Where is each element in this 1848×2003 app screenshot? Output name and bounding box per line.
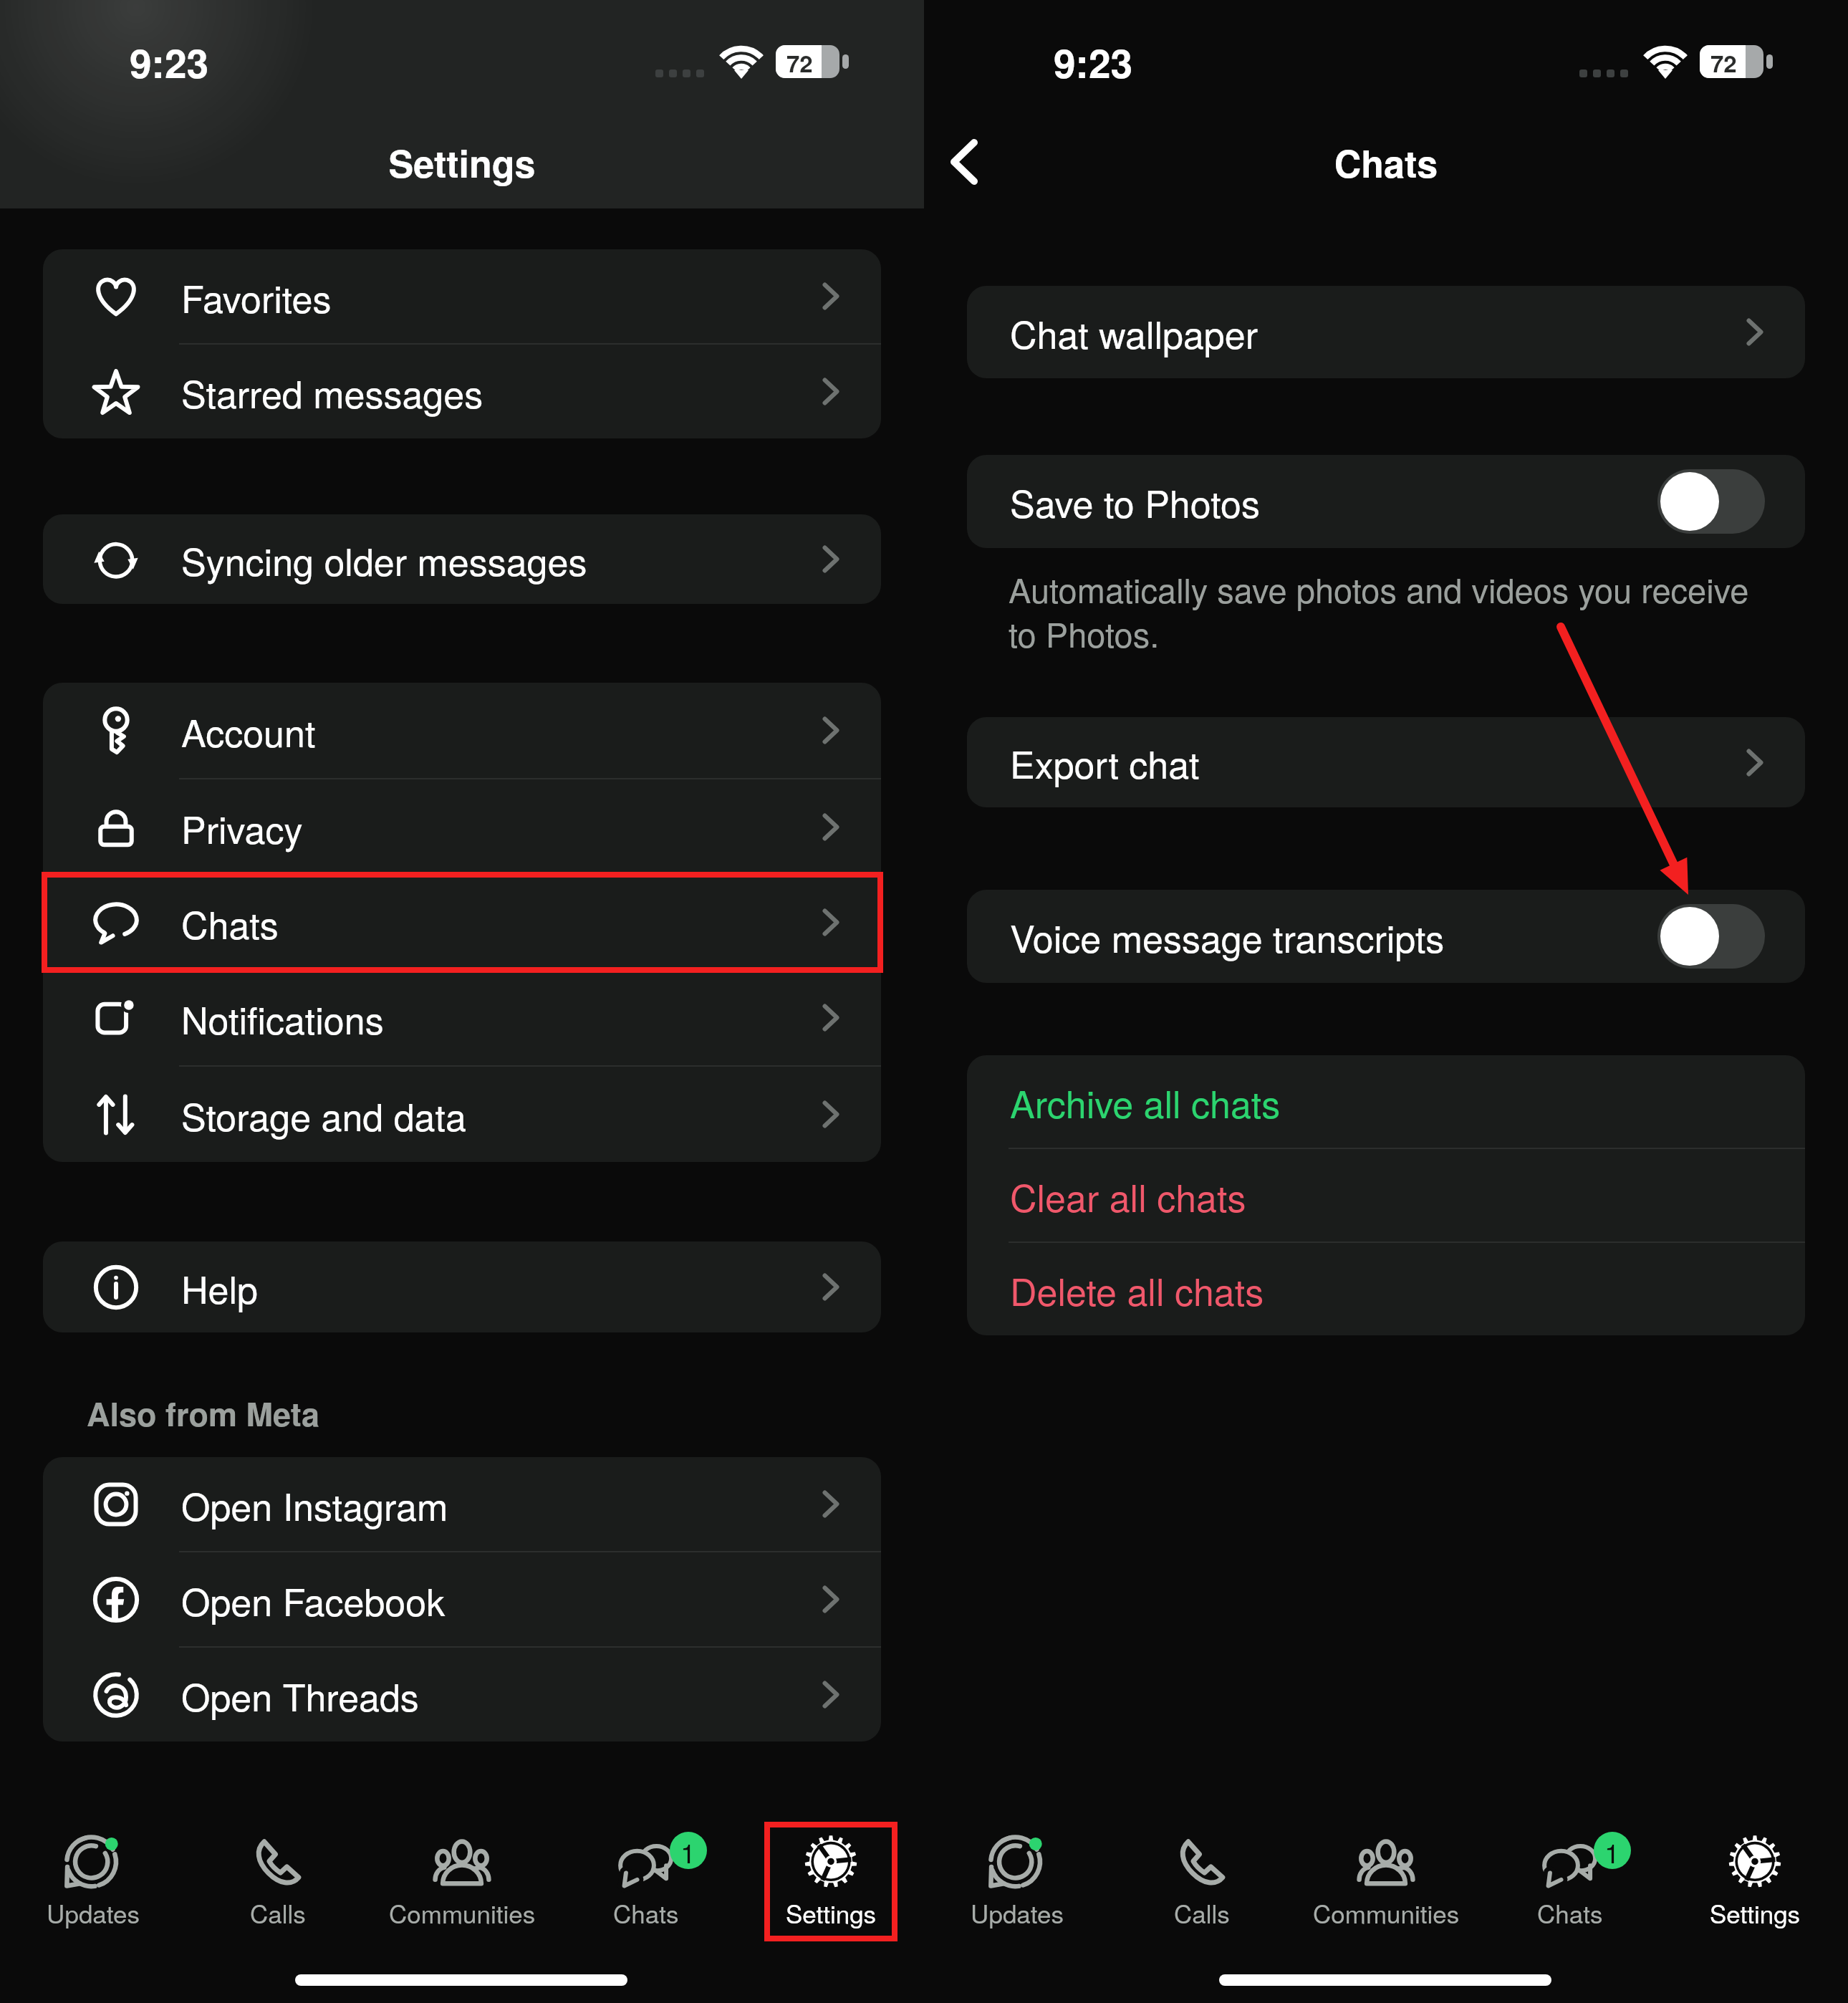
staticText: Clear all chats — [1010, 1169, 1246, 1222]
staticText: Automatically save photos and videos you… — [1009, 565, 1749, 657]
button[interactable]: Clear all chats — [967, 1149, 1805, 1241]
button[interactable]: Syncing older messages — [43, 514, 881, 604]
staticText: Settings — [0, 135, 924, 188]
staticText: Updates — [971, 1895, 1064, 1931]
staticText: Voice message transcripts — [1010, 910, 1445, 963]
staticText: Privacy — [181, 801, 303, 854]
button[interactable]: Voice message transcripts — [967, 890, 1805, 983]
button[interactable]: Settings — [740, 1805, 922, 1931]
button[interactable]: Starred messages — [43, 345, 881, 438]
staticText: Starred messages — [181, 365, 483, 418]
button[interactable]: Chat wallpaper — [967, 286, 1805, 378]
staticText: Help — [181, 1261, 258, 1314]
staticText: Account — [181, 704, 316, 757]
staticText: Chat wallpaper — [1010, 306, 1259, 359]
button[interactable]: Open Threads — [43, 1648, 881, 1742]
button[interactable]: Communities — [1295, 1805, 1477, 1931]
staticText: Export chat — [1010, 736, 1200, 789]
staticText: Open Facebook — [181, 1573, 446, 1626]
button[interactable]: 1 — [555, 1805, 737, 1931]
staticText: Communities — [1313, 1895, 1460, 1931]
button[interactable]: Notifications — [43, 970, 881, 1065]
staticText: 9:23 — [130, 34, 209, 90]
button[interactable]: Communities — [371, 1805, 553, 1931]
staticText: Open Threads — [181, 1668, 419, 1721]
button[interactable]: Settings — [1664, 1805, 1846, 1931]
staticText: 72 — [1710, 46, 1737, 80]
button[interactable]: Calls — [1111, 1805, 1293, 1931]
button[interactable]: Open Instagram — [43, 1457, 881, 1551]
button[interactable]: Favorites — [43, 249, 881, 343]
staticText: Syncing older messages — [181, 533, 587, 586]
staticText: Chats — [613, 1895, 679, 1931]
button[interactable]: Delete all chats — [967, 1243, 1805, 1335]
button[interactable]: Save to Photos — [967, 455, 1805, 548]
button[interactable]: Export chat — [967, 717, 1805, 807]
staticText: Save to Photos — [1010, 475, 1261, 528]
staticText: Archive all chats — [1010, 1075, 1281, 1128]
staticText: 1 — [680, 1832, 696, 1869]
button[interactable]: 1 — [1479, 1805, 1661, 1931]
staticText: Settings — [1710, 1895, 1801, 1931]
button[interactable]: Updates — [2, 1805, 184, 1931]
button[interactable]: Help — [43, 1241, 881, 1332]
staticText: Favorites — [181, 270, 332, 323]
staticText: Open Instagram — [181, 1478, 448, 1531]
staticText: Settings — [786, 1895, 877, 1931]
staticText: 72 — [786, 46, 813, 80]
staticText: Calls — [250, 1895, 306, 1931]
button[interactable]: Storage and data — [43, 1067, 881, 1162]
staticText: Storage and data — [181, 1088, 466, 1141]
button[interactable]: Updates — [926, 1805, 1108, 1931]
button[interactable]: Account — [43, 683, 881, 778]
staticText: 9:23 — [1054, 34, 1133, 90]
button[interactable]: Chats — [43, 875, 881, 970]
button[interactable]: Calls — [187, 1805, 369, 1931]
staticText: Delete all chats — [1010, 1263, 1264, 1316]
button[interactable]: Privacy — [43, 779, 881, 875]
staticText: Also from Meta — [87, 1390, 320, 1436]
staticText: 1 — [1604, 1832, 1620, 1869]
button[interactable]: Open Facebook — [43, 1552, 881, 1646]
staticText: Notifications — [181, 991, 384, 1044]
button[interactable]: Archive all chats — [967, 1055, 1805, 1148]
staticText: Communities — [389, 1895, 536, 1931]
staticText: Chats — [1537, 1895, 1603, 1931]
staticText: Calls — [1174, 1895, 1230, 1931]
staticText: Updates — [47, 1895, 140, 1931]
staticText: Chats — [181, 896, 279, 949]
staticText: Chats — [924, 135, 1848, 188]
button[interactable]: Back — [924, 122, 1004, 202]
